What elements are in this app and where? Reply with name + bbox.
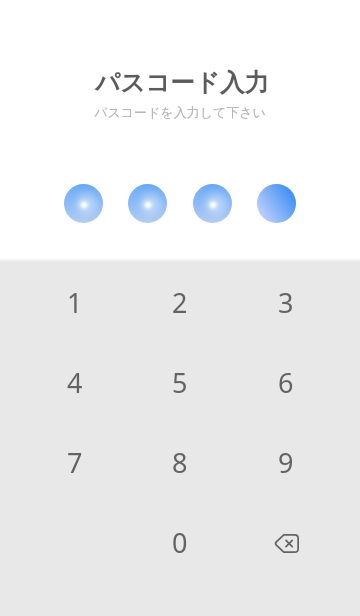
button[interactable]: 0 [127,502,232,582]
staticText: 7 [67,444,83,481]
button[interactable]: 4 [22,342,127,422]
staticText: 0 [172,524,188,561]
button[interactable]: 9 [233,422,338,502]
button[interactable]: Delete [233,502,338,582]
staticText: 3 [278,284,294,321]
button[interactable]: 3 [233,262,338,342]
staticText: パスコードを入力して下さい [0,104,360,120]
button[interactable]: 8 [127,422,232,502]
staticText: 9 [278,444,294,481]
staticText: 2 [172,284,188,321]
staticText: パスコード入力 [2,67,360,98]
staticText: 8 [172,444,188,481]
other: Delete [274,534,299,553]
button[interactable]: 1 [22,262,127,342]
staticText: 4 [67,364,83,401]
button[interactable]: 2 [127,262,232,342]
staticText: 6 [278,364,294,401]
staticText: 1 [67,284,83,321]
staticText: 5 [172,364,188,401]
button[interactable]: 6 [233,342,338,422]
button[interactable]: 7 [22,422,127,502]
button[interactable]: 5 [127,342,232,422]
